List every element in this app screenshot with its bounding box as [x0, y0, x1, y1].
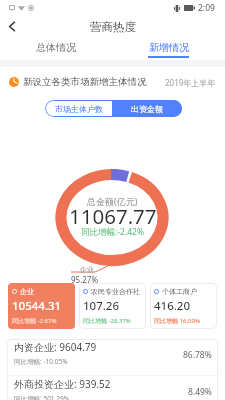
staticText: 同比增幅:-2.42% [81, 226, 144, 238]
staticText: 农民专业合作社 [91, 287, 140, 296]
staticText: 营商热度 [90, 20, 136, 34]
button[interactable]: 市场主体户数 [45, 100, 112, 117]
staticText: 新增情况 [149, 41, 189, 54]
staticText: 外商投资企业: 939.52 [14, 377, 111, 391]
staticText: 416.20 [154, 298, 191, 314]
button[interactable]: Back [0, 15, 24, 37]
staticText: 出资金额 [131, 104, 163, 114]
staticText: 个体工商户 [162, 287, 197, 296]
staticText: 11067.77 [69, 202, 157, 230]
staticText: 107.26 [83, 298, 120, 314]
staticText: 新设立各类市场新增主体情况 [23, 76, 147, 88]
staticText: 同比增幅 -2.67% [12, 317, 57, 325]
staticText: 市场主体户数 [55, 104, 103, 114]
button[interactable]: 企业 [8, 283, 75, 329]
button[interactable]: 新增情况 [112, 37, 225, 60]
staticText: 同比增幅: 501.29% [14, 394, 70, 400]
button[interactable]: 外商投资企业: 939.52 [7, 376, 218, 400]
staticText: 2:09 [198, 2, 215, 14]
button[interactable]: 农民专业合作社 [79, 283, 146, 329]
staticText: 95.27% [71, 274, 99, 285]
button[interactable]: 个体工商户 [150, 283, 217, 329]
button[interactable]: 总体情况 [0, 37, 112, 60]
staticText: 2019年上半年 [165, 77, 216, 88]
staticText: 8.49% [188, 386, 212, 398]
button[interactable]: 内资企业: 9604.79 [7, 339, 218, 375]
staticText: 同比增幅: -10.05% [14, 357, 68, 366]
button[interactable]: 出资金额 [112, 100, 182, 117]
staticText: 同比增幅 16.00% [154, 317, 200, 325]
staticText: 10544.31 [12, 298, 62, 314]
staticText: 同比增幅 -28.37% [83, 317, 131, 325]
staticText: 86.78% [183, 349, 212, 361]
staticText: 企业 [20, 287, 34, 296]
staticText: 总金额(亿元) [87, 195, 138, 207]
staticText: 内资企业: 9604.79 [14, 340, 97, 354]
staticText: 总体情况 [36, 41, 76, 54]
staticText: 企业 [80, 265, 94, 274]
